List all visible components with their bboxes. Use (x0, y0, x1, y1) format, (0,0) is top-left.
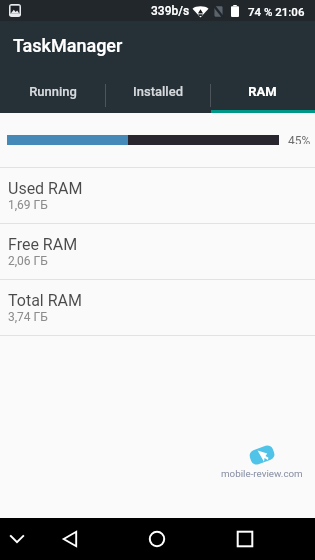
staticText: Total RAM (8, 291, 82, 310)
button[interactable]: Total RAM (0, 280, 315, 336)
button[interactable]: Used RAM (0, 168, 315, 224)
staticText: RAM (248, 84, 277, 99)
staticText: 339b/s (151, 4, 190, 18)
staticText: Installed (133, 84, 183, 99)
staticText: 2,06 ГБ (8, 254, 48, 268)
staticText: Free RAM (8, 235, 78, 254)
button[interactable]: Recents (232, 526, 258, 552)
button[interactable]: Back (57, 526, 83, 552)
button[interactable]: Installed (105, 77, 210, 113)
button[interactable]: Home (144, 526, 170, 552)
staticText: 1,69 ГБ (8, 198, 48, 212)
staticText: 45% (288, 134, 311, 144)
staticText: TaskManager (13, 35, 123, 56)
staticText: 74 % 21:06 (248, 5, 305, 18)
button[interactable]: Running (0, 77, 105, 113)
staticText: mobile-review.com (221, 468, 303, 479)
staticText: Running (29, 84, 77, 99)
staticText: 3,74 ГБ (8, 310, 48, 324)
button[interactable]: RAM (210, 77, 315, 113)
button[interactable]: Hide keyboard (4, 526, 30, 552)
button[interactable]: Free RAM (0, 224, 315, 280)
staticText: Used RAM (8, 179, 83, 198)
